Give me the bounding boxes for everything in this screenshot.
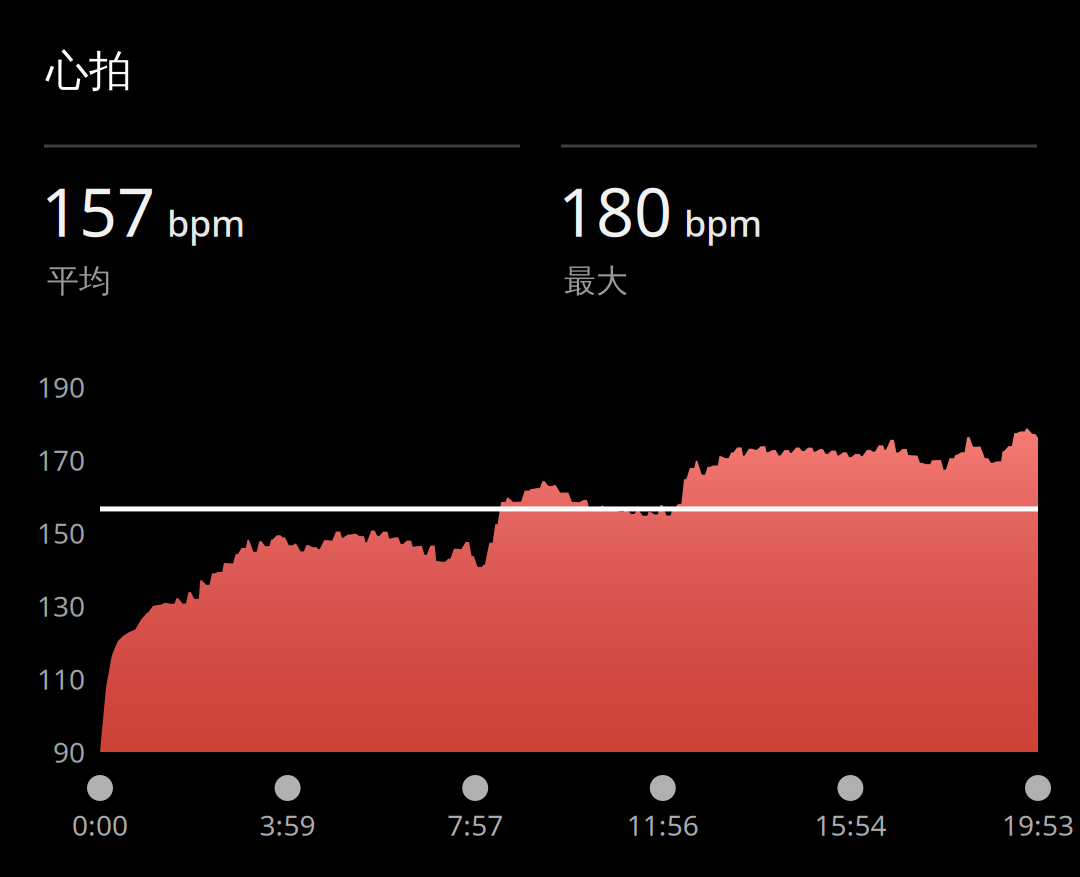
staticText: 90 <box>53 733 85 771</box>
button[interactable]: 180 <box>0 0 1080 877</box>
button[interactable]: Heart rate chart <box>0 0 1080 877</box>
staticText: 7:57 <box>447 806 503 844</box>
staticText: 11:56 <box>627 806 699 844</box>
staticText: 170 <box>37 441 85 479</box>
staticText: 0:00 <box>72 806 128 844</box>
staticText: 19:53 <box>1002 806 1074 844</box>
button[interactable]: 157 <box>0 0 1080 877</box>
staticText: bpm <box>684 199 762 247</box>
staticText: 15:54 <box>814 806 886 844</box>
staticText: 最大 <box>564 261 628 301</box>
staticText: 130 <box>37 587 85 625</box>
staticText: 3:59 <box>260 806 316 844</box>
staticText: 180 <box>558 167 672 255</box>
staticText: bpm <box>167 199 245 247</box>
staticText: 110 <box>37 660 85 698</box>
staticText: 平均 <box>47 261 111 301</box>
staticText: 150 <box>37 514 85 552</box>
staticText: 157 <box>41 167 155 255</box>
staticText: 190 <box>37 368 85 406</box>
staticText: 心拍 <box>46 45 132 97</box>
